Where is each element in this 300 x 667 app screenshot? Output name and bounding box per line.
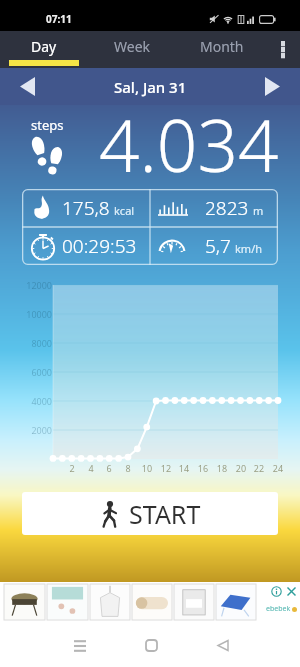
- button[interactable]: More options: [266, 31, 300, 68]
- staticText: steps: [31, 116, 64, 134]
- staticText: km/h: [235, 241, 263, 256]
- staticText: ebebek: [266, 604, 291, 614]
- staticText: 07:11: [46, 12, 72, 26]
- staticText: 10: [140, 462, 154, 474]
- staticText: 18: [215, 462, 229, 474]
- button[interactable]: Next day: [245, 68, 300, 105]
- staticText: m: [253, 203, 264, 218]
- staticText: 10000: [0, 308, 52, 320]
- staticText: 8000: [0, 337, 52, 349]
- button[interactable]: [4, 584, 45, 620]
- staticText: 00:29:53: [62, 233, 137, 259]
- button[interactable]: Previous day: [0, 68, 55, 105]
- staticText: 16: [196, 462, 210, 474]
- button[interactable]: 00:29:53: [22, 227, 150, 265]
- button[interactable]: Day: [0, 31, 88, 68]
- button[interactable]: [90, 584, 130, 620]
- staticText: 14: [177, 462, 191, 474]
- staticText: Day: [31, 37, 57, 56]
- button[interactable]: Home: [130, 624, 173, 667]
- button[interactable]: [216, 584, 256, 620]
- staticText: 2: [65, 462, 79, 474]
- staticText: 8: [121, 462, 135, 474]
- button[interactable]: 5,7: [150, 227, 278, 265]
- staticText: Week: [114, 37, 151, 56]
- staticText: 24: [271, 462, 285, 474]
- staticText: 6000: [0, 366, 52, 378]
- staticText: 2000: [0, 424, 52, 436]
- staticText: 6: [102, 462, 116, 474]
- button[interactable]: 2823: [150, 189, 278, 227]
- button[interactable]: [132, 584, 172, 620]
- staticText: 4000: [0, 395, 52, 407]
- staticText: 5,7: [205, 233, 231, 259]
- staticText: 2823: [205, 195, 249, 221]
- staticText: 20: [234, 462, 248, 474]
- button[interactable]: Month: [177, 31, 266, 68]
- staticText: 4.034: [99, 96, 279, 180]
- staticText: Month: [200, 37, 244, 56]
- staticText: 12000: [0, 279, 52, 291]
- button[interactable]: [47, 584, 88, 620]
- button[interactable]: Week: [88, 31, 177, 68]
- staticText: START: [129, 497, 201, 531]
- button[interactable]: 175,8: [22, 189, 150, 227]
- staticText: 175,8: [62, 195, 110, 221]
- button[interactable]: Close ad: [286, 586, 297, 597]
- staticText: 22: [252, 462, 266, 474]
- staticText: 12: [159, 462, 173, 474]
- button[interactable]: Ad information: [271, 586, 282, 597]
- staticText: 4: [84, 462, 98, 474]
- button[interactable]: START: [22, 492, 278, 535]
- button[interactable]: Recent apps: [58, 624, 101, 667]
- button[interactable]: [174, 584, 214, 620]
- button[interactable]: Back: [201, 624, 244, 667]
- staticText: kcal: [114, 203, 135, 218]
- staticText: Sal, Jan 31: [114, 77, 187, 97]
